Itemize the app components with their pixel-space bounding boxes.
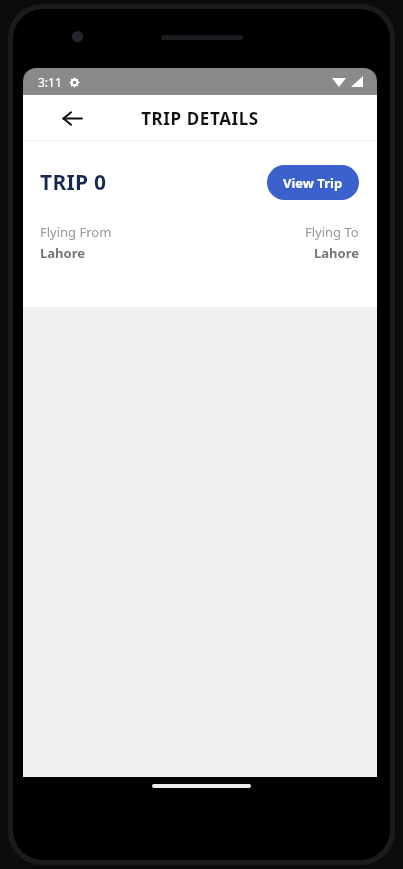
staticText: TRIP DETAILS	[141, 107, 259, 130]
staticText: Lahore	[314, 244, 359, 262]
staticText: Lahore	[40, 244, 85, 262]
staticText: 3:11	[38, 74, 62, 90]
staticText: Flying To	[305, 223, 359, 241]
staticText: TRIP 0	[40, 168, 107, 197]
button[interactable]: View Trip	[267, 165, 359, 200]
button[interactable]: Back	[55, 101, 89, 135]
staticText: Flying From	[40, 223, 112, 241]
staticText: View Trip	[283, 174, 343, 192]
